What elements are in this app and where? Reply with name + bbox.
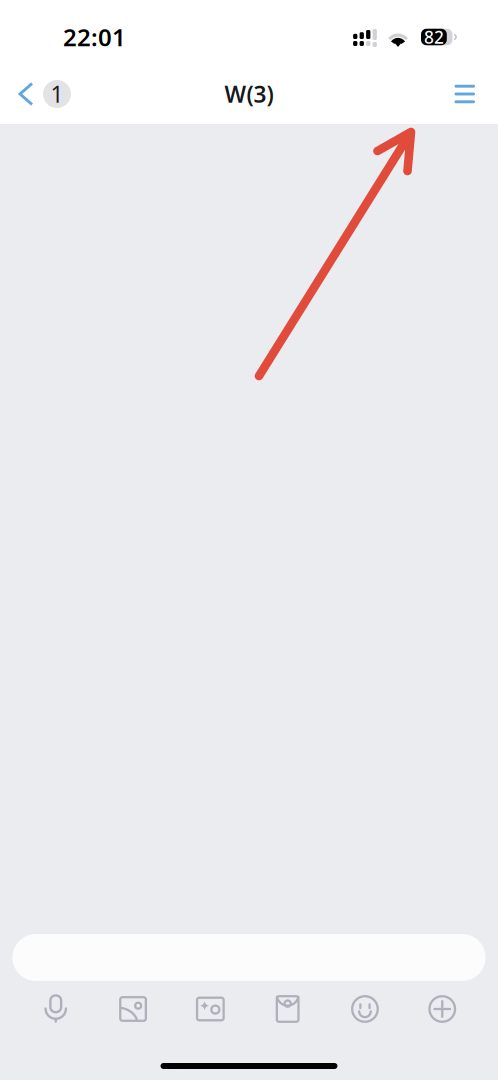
staticText: W(3) xyxy=(224,79,273,109)
staticText: 82 xyxy=(424,25,444,48)
button[interactable]: Emoji xyxy=(326,992,404,1026)
staticText: 22:01 xyxy=(63,21,126,53)
button[interactable]: Stickers xyxy=(172,992,249,1026)
staticText: 1 xyxy=(50,79,63,109)
button[interactable]: Back xyxy=(0,64,83,124)
button[interactable]: Photos xyxy=(94,992,172,1026)
button[interactable]: Menu xyxy=(438,64,498,124)
button[interactable]: Voice message xyxy=(17,992,94,1026)
button[interactable]: More xyxy=(404,992,481,1026)
button[interactable]: Red packet xyxy=(249,992,326,1026)
